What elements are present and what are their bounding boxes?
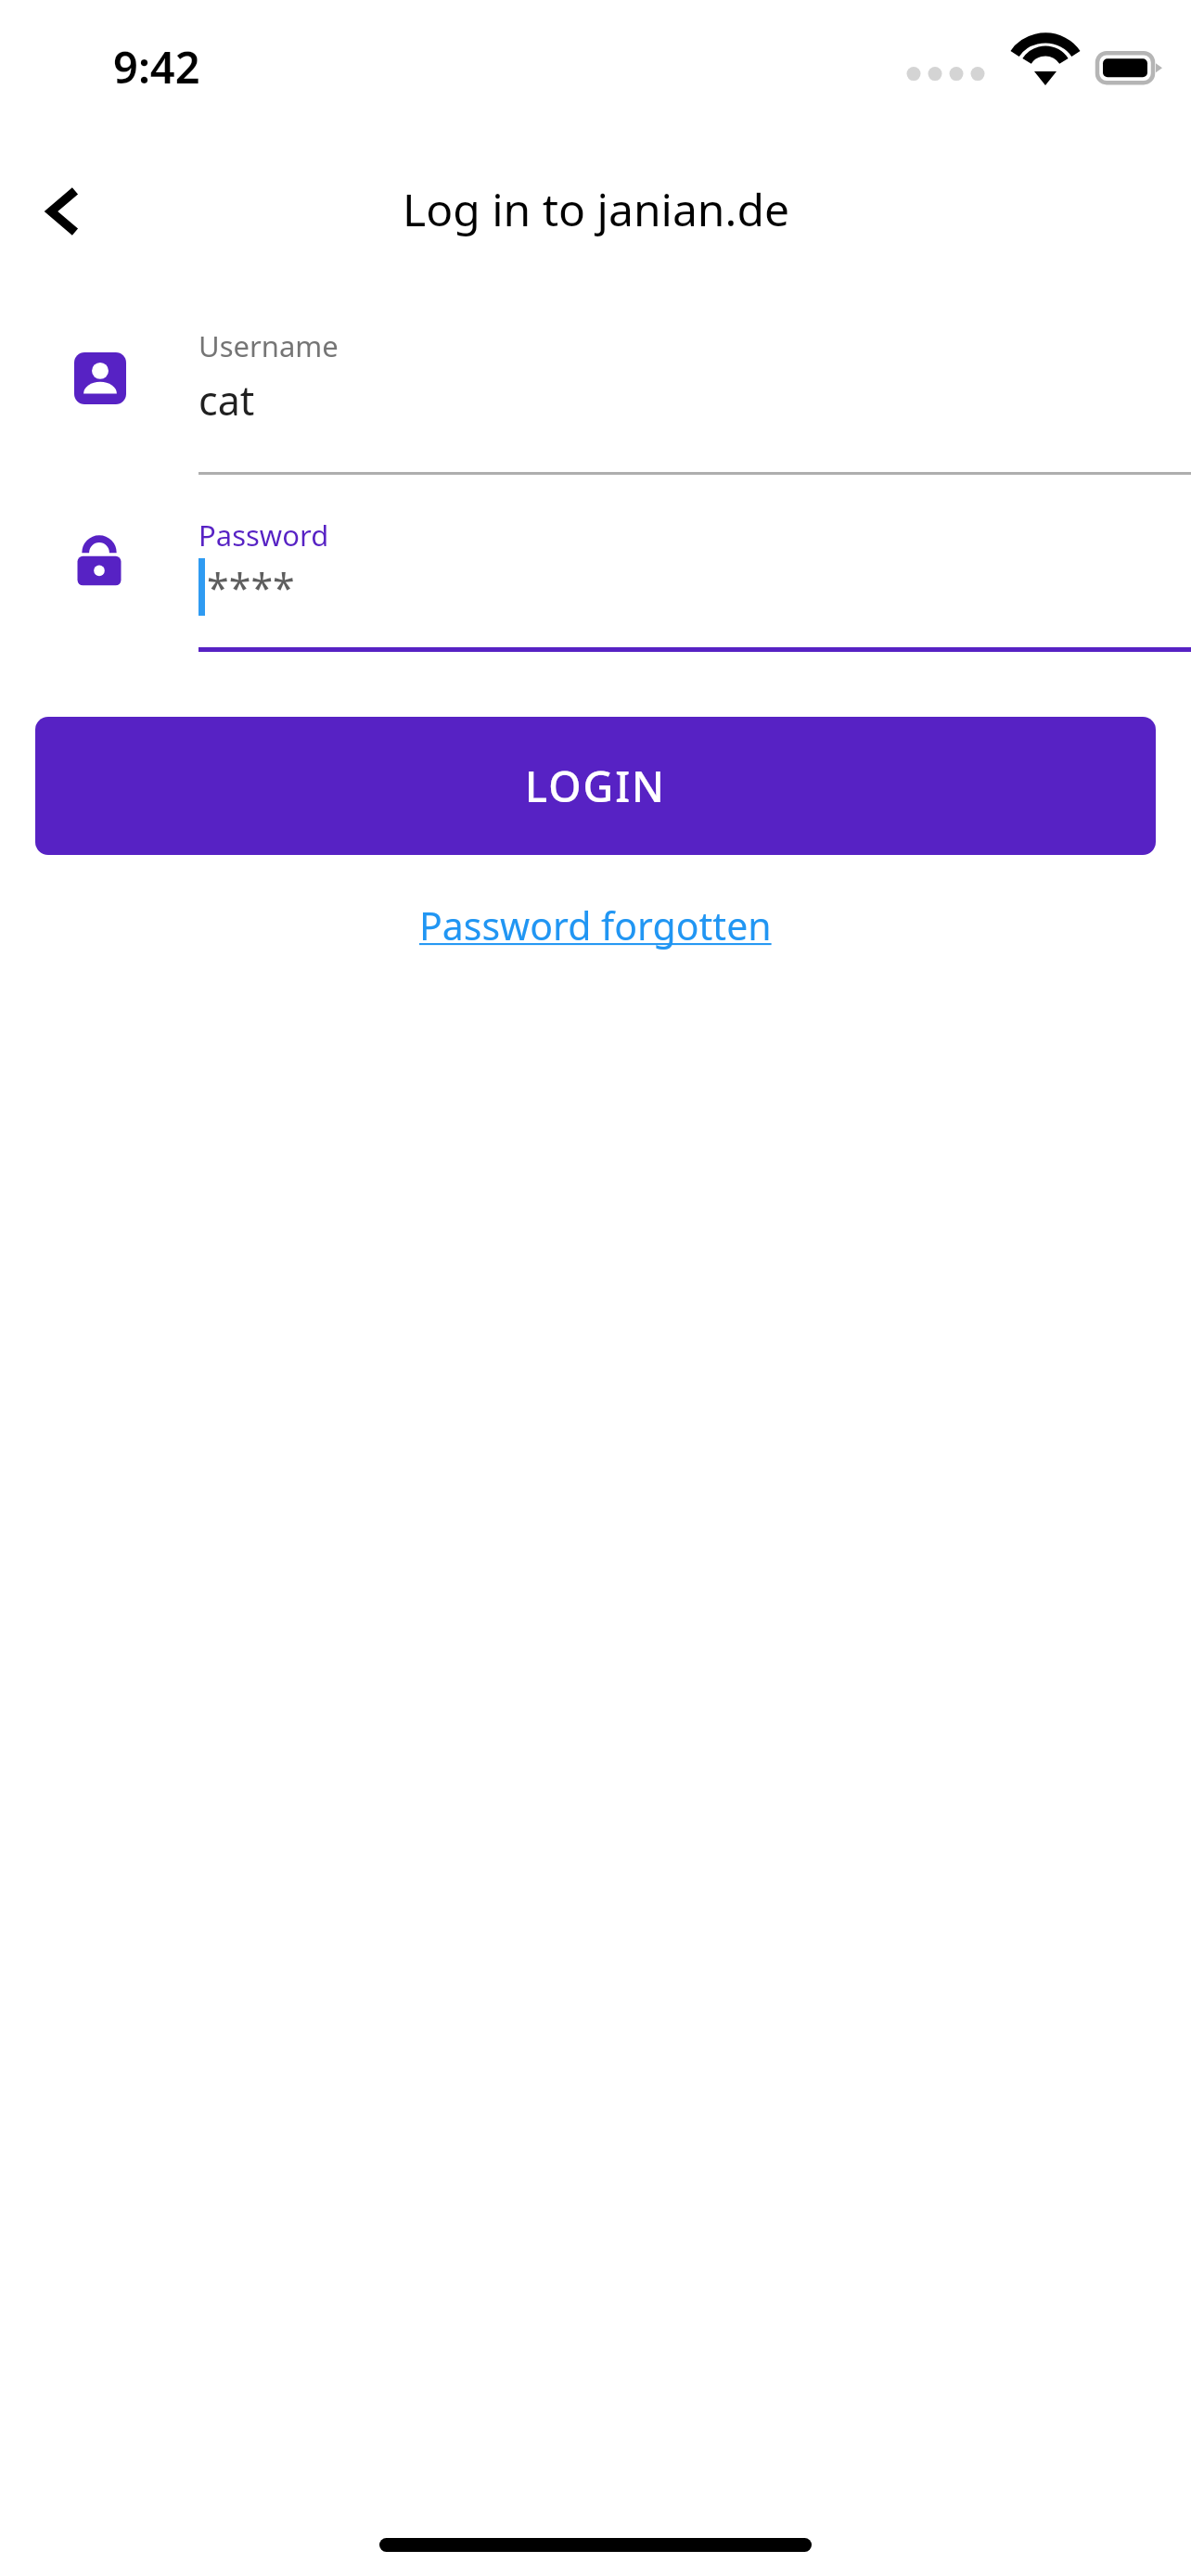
button[interactable]: LOGIN: [35, 717, 1156, 855]
button[interactable]: Back: [19, 167, 108, 256]
staticText: ****: [207, 560, 295, 615]
staticText: Log in to janian.de: [403, 179, 789, 239]
button[interactable]: Username: [198, 326, 1191, 475]
staticText: cat: [198, 373, 255, 427]
staticText: Password: [198, 516, 329, 555]
staticText: 9:42: [113, 37, 200, 96]
staticText: LOGIN: [525, 758, 666, 814]
staticText: Password forgotten: [419, 899, 772, 951]
staticText: Username: [198, 326, 339, 365]
button[interactable]: Password: [198, 516, 1191, 652]
button[interactable]: Password forgotten: [404, 892, 787, 959]
